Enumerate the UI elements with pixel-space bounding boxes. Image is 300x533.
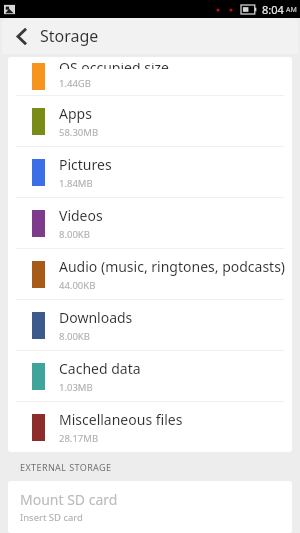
staticText: Mount SD card [20,490,118,509]
button[interactable]: Apps [8,96,292,146]
staticText: 1.44GB [59,77,91,90]
staticText: EXTERNAL STORAGE [20,461,112,473]
staticText: 8.00KB [59,228,90,241]
button[interactable]: Mount SD card [8,481,292,533]
staticText: Apps [59,104,92,123]
button[interactable]: Audio (music, ringtones, podcasts) [8,249,292,299]
staticText: OS occupied size [59,63,169,69]
staticText: Miscellaneous files [59,410,183,429]
button[interactable]: Miscellaneous files [8,402,292,452]
button[interactable]: Videos [8,198,292,248]
staticText: 44.00KB [59,279,96,292]
button[interactable]: Pictures [8,147,292,197]
staticText: 8:04 [262,2,284,17]
staticText: AM [286,5,297,15]
staticText: Downloads [59,308,133,327]
staticText: 1.03MB [59,381,93,394]
button[interactable]: Downloads [8,300,292,350]
staticText: Cached data [59,359,141,378]
staticText: Videos [59,206,103,225]
staticText: Audio (music, ringtones, podcasts) [59,257,286,276]
button[interactable]: Cached data [8,351,292,401]
staticText: 1.84MB [59,177,93,190]
staticText: Pictures [59,155,112,174]
staticText: 8.00KB [59,330,90,343]
button[interactable]: Back [2,18,40,54]
button[interactable]: OS occupied size [8,57,292,95]
staticText: Storage [40,25,99,47]
staticText: 58.30MB [59,126,99,139]
staticText: 28.17MB [59,432,99,445]
staticText: Insert SD card [20,511,83,523]
